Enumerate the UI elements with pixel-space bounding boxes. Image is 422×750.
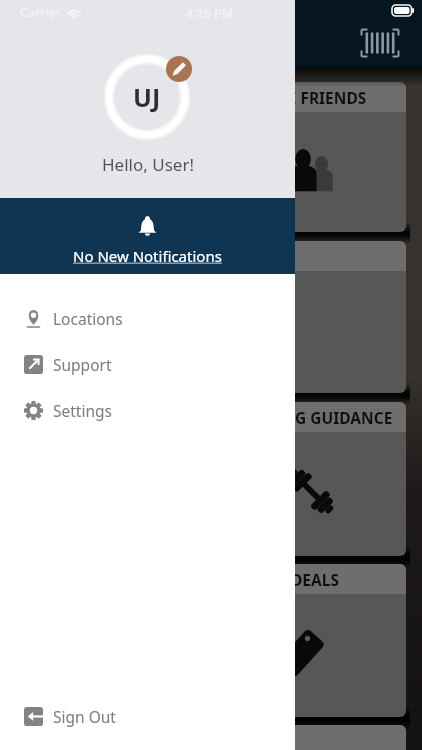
button[interactable]: Locations	[0, 295, 295, 341]
button[interactable]: No New Notifications	[0, 198, 295, 274]
staticText: UJ	[133, 80, 161, 114]
staticText: INVITE FRIENDS	[244, 87, 367, 108]
staticText: Carrier	[20, 4, 61, 21]
staticText: Hello, User!	[102, 153, 194, 176]
staticText: 4:16 PM	[186, 5, 234, 22]
button[interactable]: Sign Out	[0, 693, 295, 739]
button[interactable]: Settings	[0, 387, 295, 433]
button[interactable]: Support	[0, 341, 295, 387]
button[interactable]: Scan barcode	[360, 28, 400, 58]
staticText: Locations	[53, 308, 123, 329]
button[interactable]: INVITE FRIENDS	[16, 82, 406, 232]
button[interactable]: Edit profile	[166, 56, 192, 82]
button[interactable]	[16, 725, 406, 750]
staticText: Settings	[53, 400, 112, 421]
staticText: TRAINING GUIDANCE	[228, 407, 393, 428]
button[interactable]: DEALS	[16, 564, 406, 717]
staticText: DEALS	[291, 569, 339, 590]
staticText: Sign Out	[53, 706, 116, 727]
staticText: No New Notifications	[73, 246, 222, 266]
button[interactable]	[16, 241, 406, 393]
staticText: Support	[53, 354, 112, 375]
button[interactable]: TRAINING GUIDANCE	[16, 402, 406, 556]
